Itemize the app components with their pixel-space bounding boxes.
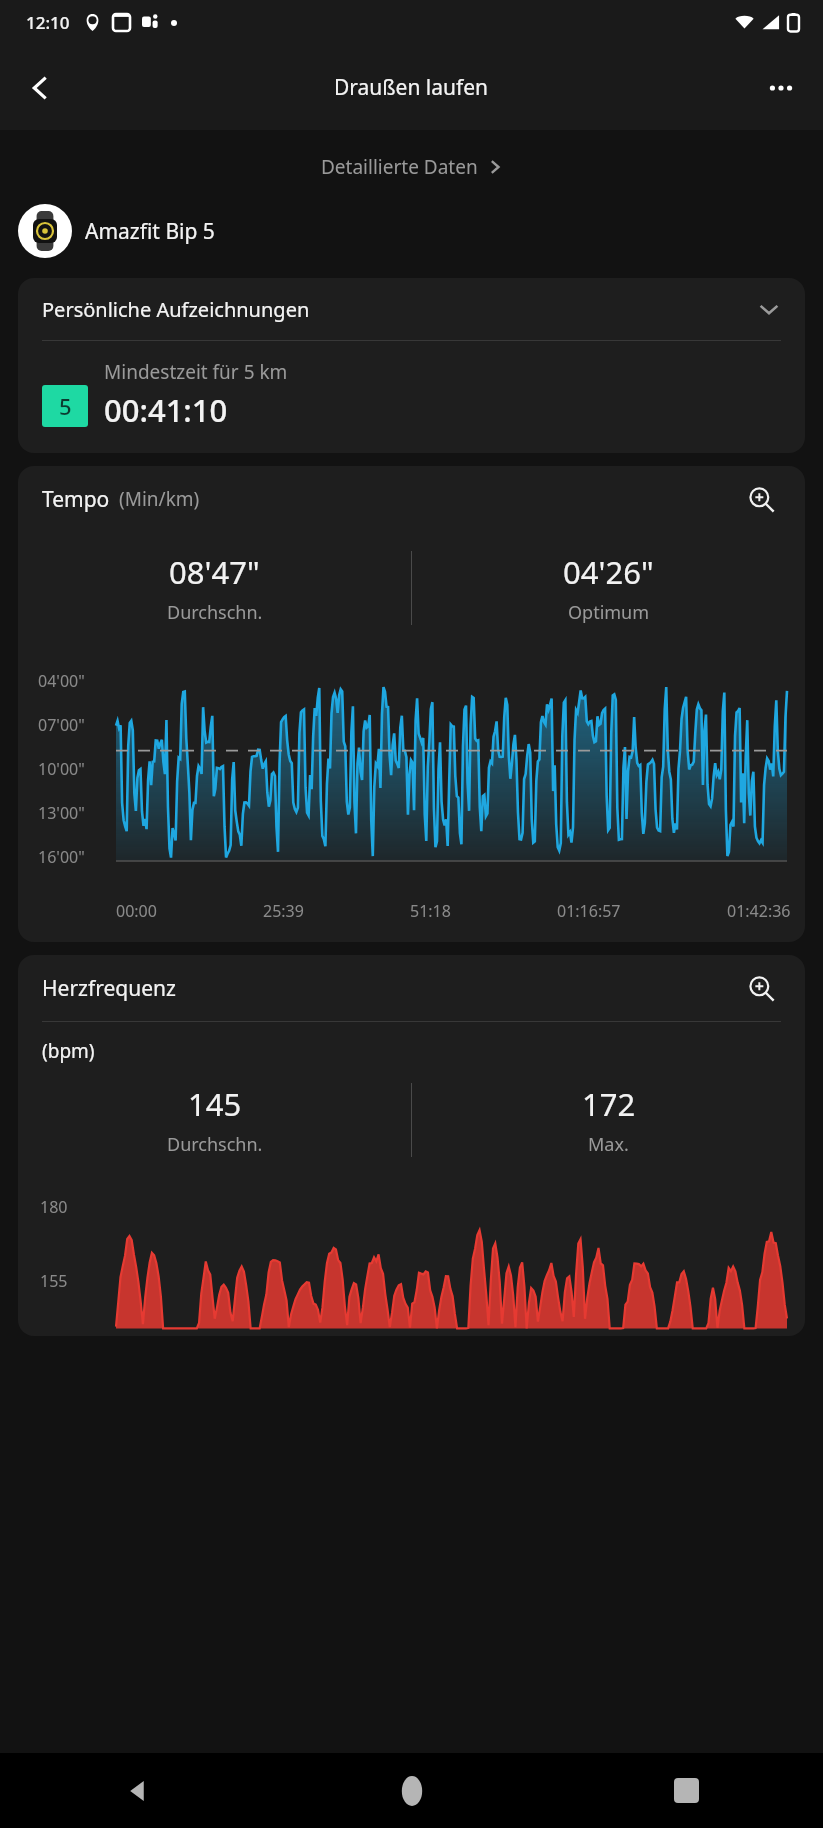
staticText: 01:16:57: [557, 900, 621, 922]
staticText: 16'00": [38, 846, 85, 868]
staticText: 51:18: [410, 900, 451, 922]
button[interactable]: Detaillierte Daten: [0, 140, 823, 194]
staticText: 5: [59, 391, 72, 421]
staticText: 155: [40, 1270, 68, 1292]
staticText: (bpm): [42, 1038, 95, 1064]
staticText: Draußen laufen: [334, 73, 489, 102]
staticText: 145: [188, 1083, 242, 1125]
staticText: (Min/km): [119, 486, 200, 512]
staticText: Durchschn.: [167, 600, 263, 625]
button[interactable]: Zoom in chart: [741, 479, 781, 519]
staticText: Amazfit Bip 5: [85, 217, 215, 246]
staticText: Max.: [588, 1132, 629, 1157]
staticText: 04'00": [38, 670, 85, 692]
button[interactable]: More options: [753, 60, 809, 116]
button[interactable]: Persönliche Aufzeichnungen: [18, 278, 805, 340]
button[interactable]: Back: [12, 59, 70, 117]
staticText: 180: [40, 1196, 68, 1218]
staticText: Herzfrequenz: [42, 974, 176, 1003]
button[interactable]: Home: [275, 1753, 549, 1828]
staticText: 01:42:36: [727, 900, 791, 922]
staticText: 172: [582, 1083, 636, 1125]
staticText: 07'00": [38, 714, 85, 736]
button[interactable]: Recent apps: [549, 1753, 823, 1828]
staticText: Persönliche Aufzeichnungen: [42, 296, 310, 323]
staticText: Mindestzeit für 5 km: [104, 359, 288, 385]
staticText: 13'00": [38, 802, 85, 824]
staticText: 25:39: [263, 900, 304, 922]
staticText: 00:00: [116, 900, 157, 922]
staticText: 04'26": [563, 551, 654, 593]
staticText: 00:41:10: [104, 389, 228, 431]
staticText: 10'00": [38, 758, 85, 780]
staticText: Durchschn.: [167, 1132, 263, 1157]
staticText: 08'47": [169, 551, 260, 593]
button[interactable]: Back: [0, 1753, 275, 1828]
staticText: Tempo: [42, 485, 110, 514]
staticText: Optimum: [568, 600, 650, 625]
button[interactable]: Amazfit Bip 5: [18, 202, 823, 260]
button[interactable]: Zoom in chart: [741, 968, 781, 1008]
staticText: Detaillierte Daten: [321, 154, 478, 180]
staticText: 12:10: [26, 11, 70, 34]
